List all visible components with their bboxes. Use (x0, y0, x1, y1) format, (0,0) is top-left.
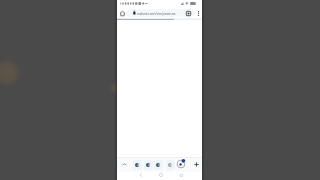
button[interactable]: More options (193, 8, 204, 18)
button[interactable]: Hide tab strip (119, 159, 129, 169)
button[interactable]: Current tab (175, 158, 187, 170)
button[interactable]: Home (156, 171, 166, 179)
button[interactable]: Switch or close tabs (183, 8, 193, 18)
button[interactable]: Recent apps (176, 171, 186, 179)
button[interactable]: Tab 2 (143, 159, 153, 170)
button[interactable]: Back (136, 171, 146, 179)
button[interactable]: Home (117, 8, 127, 18)
button[interactable]: Tab 1 (132, 159, 142, 170)
staticText: naked.com/en/promos (137, 11, 176, 16)
button[interactable]: Tab 3 (153, 159, 163, 170)
button[interactable]: Search or type web address (126, 9, 195, 17)
button[interactable]: New tab (191, 159, 201, 169)
button[interactable]: Tab 4 (165, 159, 175, 170)
